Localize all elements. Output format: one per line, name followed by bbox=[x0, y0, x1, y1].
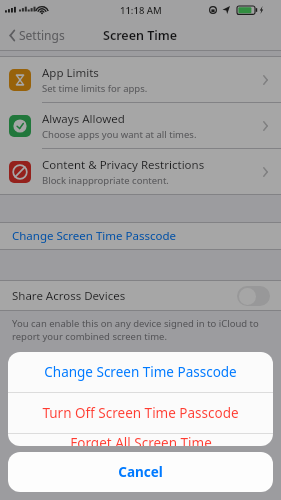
staticText: App Limits bbox=[42, 65, 99, 81]
button[interactable]: Always Allowed bbox=[0, 103, 281, 149]
button[interactable]: Cancel bbox=[8, 452, 273, 492]
button[interactable]: Share Across Devices bbox=[0, 281, 281, 310]
staticText: Choose apps you want at all times. bbox=[42, 128, 197, 141]
button[interactable]: Content & Privacy Restrictions bbox=[0, 149, 281, 194]
staticText: Cancel bbox=[118, 463, 163, 481]
button[interactable]: Turn Off Screen Time Passcode bbox=[8, 393, 273, 433]
staticText: Settings bbox=[19, 27, 65, 43]
staticText: 11:18 AM bbox=[120, 4, 162, 17]
staticText: Always Allowed bbox=[42, 111, 125, 127]
staticText: Forget All Screen Time bbox=[70, 434, 212, 446]
staticText: You can enable this on any device signed… bbox=[12, 317, 259, 343]
button[interactable]: Change Screen Time Passcode bbox=[8, 352, 273, 392]
button[interactable]: Forget All Screen Time bbox=[8, 434, 273, 446]
button[interactable]: App Limits bbox=[0, 57, 281, 103]
staticText: Content & Privacy Restrictions bbox=[42, 157, 205, 173]
staticText: Share Across Devices bbox=[12, 288, 237, 304]
button[interactable]: Change Screen Time Passcode bbox=[0, 223, 281, 249]
staticText: Change Screen Time Passcode bbox=[12, 228, 176, 244]
staticText: Screen Time bbox=[103, 27, 178, 44]
staticText: Change Screen Time Passcode bbox=[44, 363, 237, 381]
staticText: Turn Off Screen Time Passcode bbox=[42, 404, 239, 422]
button[interactable]: Settings bbox=[5, 23, 68, 47]
staticText: Block inappropriate content. bbox=[42, 174, 169, 187]
staticText: Set time limits for apps. bbox=[42, 82, 148, 95]
